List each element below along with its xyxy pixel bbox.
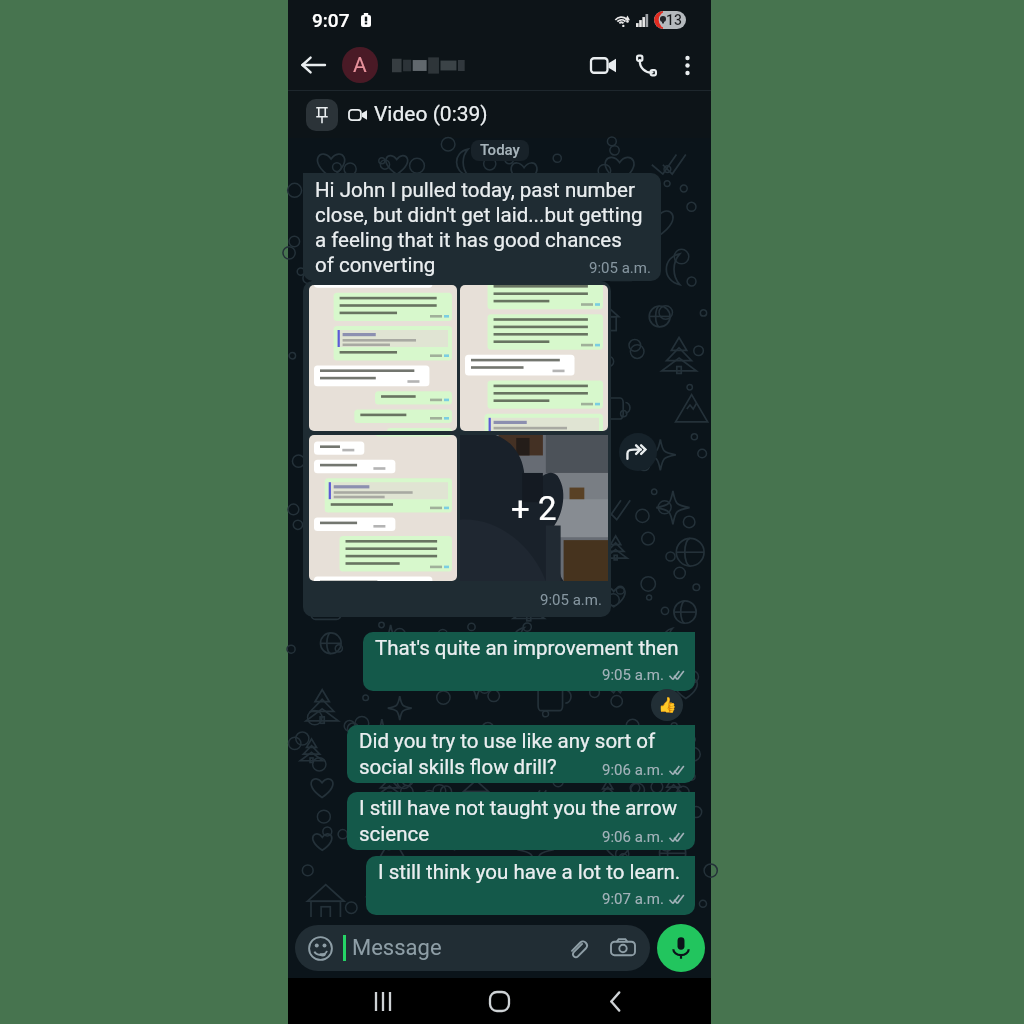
staticText: Did you try to use like any sort of soci… [359,729,656,779]
button[interactable]: Message [295,925,650,971]
button[interactable]: Recents [324,978,441,1024]
button[interactable]: Voice call [625,44,667,86]
staticText: 9:05 a.m. [540,591,602,609]
staticText: 9:05 a.m. [602,666,664,684]
staticText: Today [480,141,520,160]
staticText: 9:07 a.m. [602,890,664,908]
staticText: + 2 [511,489,557,528]
button[interactable]: More options [667,45,707,85]
staticText: A [353,53,367,78]
button[interactable]: Profile [342,47,378,83]
button[interactable]: Back [290,42,336,88]
button[interactable]: + 2 [303,281,611,617]
button[interactable]: I still think you have a lot to learn. [366,856,695,915]
button[interactable]: Forward [619,433,657,471]
staticText: I still think you have a lot to learn. [378,860,681,908]
button[interactable]: Back [557,978,673,1024]
staticText: Hi John I pulled today, past number clos… [315,178,643,277]
button[interactable]: Home [441,978,557,1024]
button[interactable]: Reaction [651,689,683,721]
staticText: Message [352,935,442,961]
button[interactable]: Hi John I pulled today, past number clos… [303,173,661,281]
staticText: 9:07 [312,9,350,31]
button[interactable]: Voice message [657,924,705,972]
staticText: Video (0:39) [374,102,488,127]
staticText: 9:05 a.m. [589,259,651,277]
button[interactable]: I still have not taught you the arrow sc… [347,792,695,850]
staticText: 9:06 a.m. [602,761,664,779]
staticText: 9:06 a.m. [602,828,664,846]
staticText: That's quite an improvement then [375,636,679,684]
button[interactable]: That's quite an improvement then [363,632,695,691]
button[interactable]: Did you try to use like any sort of soci… [347,725,695,783]
staticText: I still have not taught you the arrow sc… [359,796,678,846]
button[interactable]: Video call [581,43,625,87]
button[interactable]: Video (0:39) [288,91,711,138]
staticText: 13 [666,12,682,28]
staticText: 👍 [658,696,677,714]
